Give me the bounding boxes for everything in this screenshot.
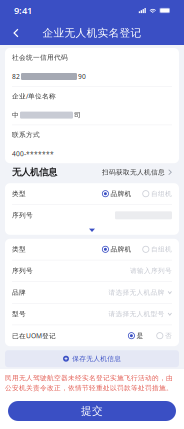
staticText: 联系方式	[12, 131, 40, 139]
staticText: 品牌	[12, 288, 26, 297]
staticText: 请选择无人机型号	[109, 310, 165, 318]
staticText: 企业无人机实名登记	[42, 26, 141, 39]
staticText: 社会统一信用代码	[12, 53, 68, 62]
staticText: 司	[74, 111, 81, 119]
staticText: 90	[78, 72, 86, 81]
staticText: 序列号	[12, 267, 33, 275]
staticText: 是	[137, 332, 144, 340]
staticText: 公安机关责令改正，依情节轻重处以罚款等处罚措施。	[5, 384, 173, 392]
staticText: 否	[165, 332, 172, 340]
button[interactable]: 提交	[8, 401, 176, 421]
staticText: 400-*******	[12, 149, 54, 158]
staticText: 序列号	[12, 211, 33, 219]
staticText: 9:41	[14, 4, 32, 17]
button[interactable]: 扫码获取无人机信息	[102, 168, 172, 176]
staticText: 企业/单位名称	[12, 92, 56, 101]
staticText: 已在UOM登记	[12, 331, 56, 340]
staticText: 型号	[12, 310, 26, 318]
staticText: 民用无人驾驶航空器未经实名登记实施飞行活动的，由	[5, 374, 173, 382]
staticText: 类型	[12, 245, 26, 253]
staticText: 保存无人机信息	[72, 355, 121, 363]
staticText: 请输入序列号	[130, 267, 172, 275]
staticText: 中	[12, 111, 19, 119]
staticText: 自组机	[151, 245, 172, 253]
staticText: 请选择无人机品牌	[109, 288, 165, 297]
staticText: 82	[12, 72, 20, 81]
button[interactable]: 返回	[5, 22, 27, 44]
staticText: 自组机	[151, 190, 172, 198]
staticText: 扫码获取无人机信息	[102, 168, 165, 176]
button[interactable]: 保存无人机信息	[5, 350, 179, 367]
staticText: 提交	[81, 404, 103, 417]
staticText: 类型	[12, 190, 26, 198]
staticText: 无人机信息	[12, 166, 57, 178]
staticText: 品牌机	[111, 245, 132, 253]
staticText: 品牌机	[111, 190, 132, 198]
